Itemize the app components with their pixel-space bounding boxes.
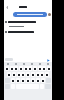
button[interactable]: Send bbox=[46, 58, 50, 62]
button[interactable] bbox=[24, 66, 28, 71]
button[interactable] bbox=[31, 72, 35, 77]
button[interactable] bbox=[7, 72, 11, 77]
button[interactable] bbox=[45, 72, 49, 77]
button[interactable] bbox=[11, 78, 15, 83]
button[interactable] bbox=[41, 78, 45, 83]
button[interactable] bbox=[36, 78, 40, 83]
button[interactable] bbox=[40, 72, 44, 77]
button[interactable] bbox=[42, 66, 46, 71]
button[interactable] bbox=[13, 12, 47, 17]
button[interactable] bbox=[33, 66, 37, 71]
button[interactable] bbox=[21, 72, 25, 77]
button[interactable] bbox=[38, 66, 42, 71]
button[interactable] bbox=[10, 66, 14, 71]
button[interactable] bbox=[28, 66, 32, 71]
button[interactable] bbox=[14, 66, 18, 71]
button[interactable] bbox=[16, 78, 20, 83]
button[interactable] bbox=[21, 78, 25, 83]
button[interactable] bbox=[5, 58, 13, 61]
button[interactable] bbox=[26, 72, 30, 77]
button[interactable] bbox=[19, 66, 23, 71]
button[interactable] bbox=[31, 78, 35, 83]
button[interactable] bbox=[5, 66, 9, 71]
button[interactable] bbox=[47, 66, 51, 71]
button[interactable] bbox=[26, 78, 30, 83]
button[interactable] bbox=[17, 72, 21, 77]
button[interactable] bbox=[12, 72, 16, 77]
button[interactable] bbox=[36, 72, 40, 77]
button[interactable]: Back bbox=[4, 4, 10, 10]
